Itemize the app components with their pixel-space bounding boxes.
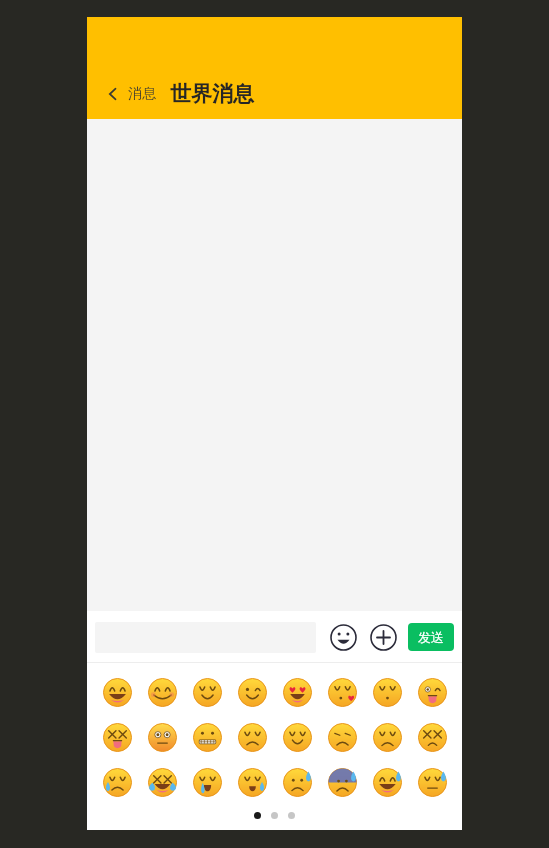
staticText: 消息 xyxy=(128,85,156,103)
button[interactable]: Emoji 16 xyxy=(95,760,140,805)
button[interactable]: Emoji 23 xyxy=(410,760,455,805)
button[interactable]: Emoji 19 xyxy=(230,760,275,805)
button[interactable]: Emoji 4 xyxy=(275,670,320,715)
button[interactable]: Emoji 12 xyxy=(275,715,320,760)
button[interactable]: Emoji 18 xyxy=(185,760,230,805)
button[interactable]: Emoji 15 xyxy=(410,715,455,760)
button[interactable]: Emoji 3 xyxy=(230,670,275,715)
button[interactable]: Emoji 22 xyxy=(365,760,410,805)
button[interactable]: Emoji 1 xyxy=(140,670,185,715)
button[interactable]: Emoji 11 xyxy=(230,715,275,760)
staticText: 发送 xyxy=(418,629,444,645)
button[interactable]: Emoji 2 xyxy=(185,670,230,715)
button[interactable]: Emoji 10 xyxy=(185,715,230,760)
button[interactable]: Emoji 20 xyxy=(275,760,320,805)
button[interactable]: Emoji 7 xyxy=(410,670,455,715)
button[interactable]: 发送 xyxy=(408,623,454,651)
button[interactable]: Emoji 13 xyxy=(320,715,365,760)
button[interactable]: Emoji 21 xyxy=(320,760,365,805)
staticText: 世界消息 xyxy=(170,81,254,107)
button[interactable]: Emoji 0 xyxy=(95,670,140,715)
button[interactable]: Emoji 5 xyxy=(320,670,365,715)
button[interactable]: More options xyxy=(366,620,400,654)
button[interactable]: Emoji 9 xyxy=(140,715,185,760)
button[interactable]: Emoji 6 xyxy=(365,670,410,715)
button[interactable]: Emoji keyboard xyxy=(326,620,360,654)
button[interactable]: Emoji 17 xyxy=(140,760,185,805)
button[interactable]: Emoji 14 xyxy=(365,715,410,760)
button[interactable]: 消息 xyxy=(105,85,160,103)
button[interactable]: Emoji 8 xyxy=(95,715,140,760)
